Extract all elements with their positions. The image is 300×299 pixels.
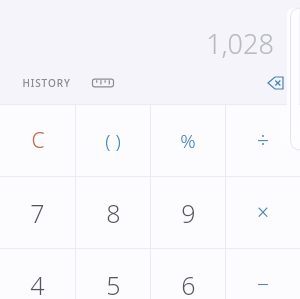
button[interactable]: 9 [151,177,225,248]
staticText: 1,028 [206,25,274,62]
button[interactable]: ( ) [76,105,150,176]
button[interactable]: Unit converter [81,70,125,96]
button[interactable]: HISTORY [0,70,81,96]
button[interactable]: − [226,249,300,299]
button[interactable]: C [0,105,75,176]
staticText: C [31,126,45,155]
staticText: ÷ [257,126,269,155]
staticText: × [257,198,269,227]
button[interactable]: 7 [0,177,75,248]
staticText: 8 [106,196,121,230]
staticText: 7 [30,196,45,230]
button[interactable]: 8 [76,177,150,248]
staticText: 5 [106,268,121,299]
button[interactable]: 4 [0,249,75,299]
button[interactable]: ÷ [226,105,300,176]
button[interactable]: 5 [76,249,150,299]
staticText: ( ) [105,128,121,154]
button[interactable]: 6 [151,249,225,299]
staticText: % [180,128,196,154]
staticText: HISTORY [22,76,71,90]
button[interactable]: % [151,105,225,176]
staticText: − [257,270,269,299]
button[interactable]: × [226,177,300,248]
staticText: 9 [181,196,196,230]
button[interactable]: Backspace [246,69,300,97]
staticText: 4 [30,268,45,299]
staticText: 6 [181,268,196,299]
